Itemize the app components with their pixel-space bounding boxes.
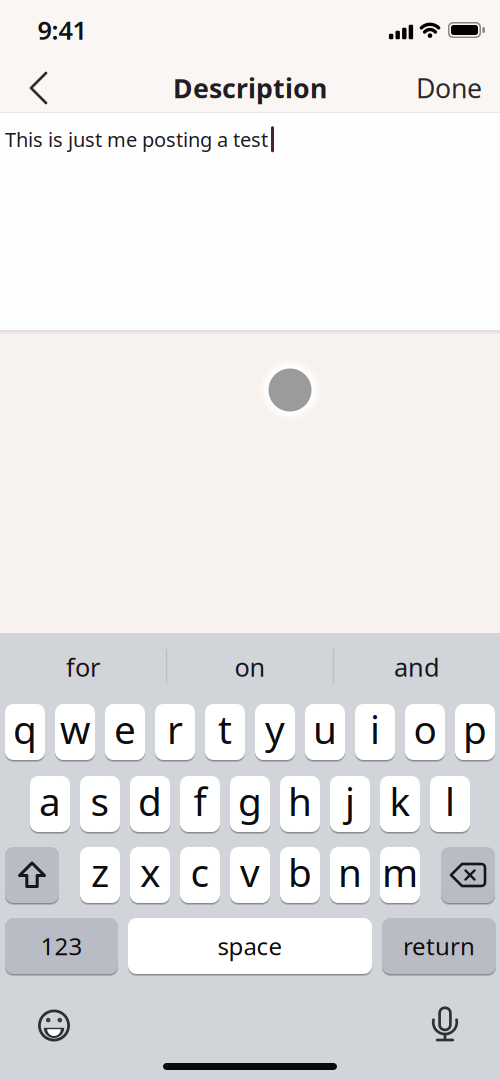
staticText: space — [217, 930, 282, 962]
staticText: a — [39, 775, 61, 827]
button[interactable]: n — [330, 847, 370, 903]
staticText: Description — [173, 70, 327, 106]
staticText: This is just me posting a test — [5, 126, 268, 153]
staticText: j — [345, 775, 355, 827]
button[interactable]: and — [337, 639, 497, 695]
button[interactable]: e — [105, 704, 145, 760]
button[interactable]: i — [355, 704, 395, 760]
button[interactable]: g — [230, 776, 270, 832]
staticText: p — [463, 703, 487, 755]
button[interactable]: z — [80, 847, 120, 903]
button[interactable]: k — [380, 776, 420, 832]
button[interactable]: for — [3, 639, 163, 695]
button[interactable]: c — [180, 847, 220, 903]
staticText: f — [193, 775, 206, 827]
staticText: n — [338, 846, 362, 898]
staticText: t — [218, 703, 232, 755]
staticText: i — [370, 703, 380, 755]
button[interactable]: v — [230, 847, 270, 903]
staticText: c — [190, 846, 209, 898]
staticText: on — [234, 650, 265, 684]
staticText: z — [91, 846, 109, 898]
button[interactable] — [430, 1005, 460, 1045]
staticText: m — [382, 846, 418, 898]
button[interactable]: u — [305, 704, 345, 760]
button[interactable]: w — [55, 704, 95, 760]
button[interactable]: j — [330, 776, 370, 832]
staticText: o — [413, 703, 436, 755]
button[interactable]: t — [205, 704, 245, 760]
staticText: g — [238, 775, 262, 827]
button[interactable]: p — [455, 704, 495, 760]
staticText: return — [403, 930, 475, 962]
button[interactable]: return — [382, 918, 496, 974]
staticText: q — [13, 703, 37, 755]
button[interactable]: This is just me posting a test — [0, 112, 500, 330]
staticText: s — [90, 775, 109, 827]
button[interactable]: 123 — [5, 918, 118, 974]
button[interactable]: Done — [409, 63, 489, 113]
button[interactable]: f — [180, 776, 220, 832]
button[interactable]: space — [128, 918, 372, 974]
staticText: b — [288, 846, 312, 898]
staticText: and — [394, 650, 440, 684]
button[interactable]: r — [155, 704, 195, 760]
staticText: 123 — [40, 930, 82, 962]
staticText: l — [445, 775, 455, 827]
staticText: 9:41 — [37, 13, 86, 47]
button[interactable]: on — [170, 639, 330, 695]
staticText: e — [114, 703, 136, 755]
button[interactable] — [441, 847, 495, 903]
button[interactable] — [36, 1007, 72, 1043]
staticText: v — [240, 846, 260, 898]
staticText: u — [313, 703, 337, 755]
button[interactable]: x — [130, 847, 170, 903]
staticText: w — [60, 703, 90, 755]
button[interactable]: l — [430, 776, 470, 832]
staticText: h — [288, 775, 312, 827]
button[interactable]: d — [130, 776, 170, 832]
button[interactable]: s — [80, 776, 120, 832]
button[interactable]: h — [280, 776, 320, 832]
button[interactable]: a — [30, 776, 70, 832]
staticText: r — [167, 703, 183, 755]
staticText: x — [140, 846, 160, 898]
button[interactable]: y — [255, 704, 295, 760]
button[interactable] — [5, 847, 59, 903]
button[interactable]: q — [5, 704, 45, 760]
button[interactable] — [0, 0, 60, 112]
staticText: d — [138, 775, 162, 827]
button[interactable]: o — [405, 704, 445, 760]
staticText: y — [265, 703, 285, 755]
staticText: for — [66, 650, 100, 684]
staticText: Done — [416, 70, 482, 106]
button[interactable]: b — [280, 847, 320, 903]
staticText: k — [389, 775, 410, 827]
button[interactable]: m — [380, 847, 420, 903]
